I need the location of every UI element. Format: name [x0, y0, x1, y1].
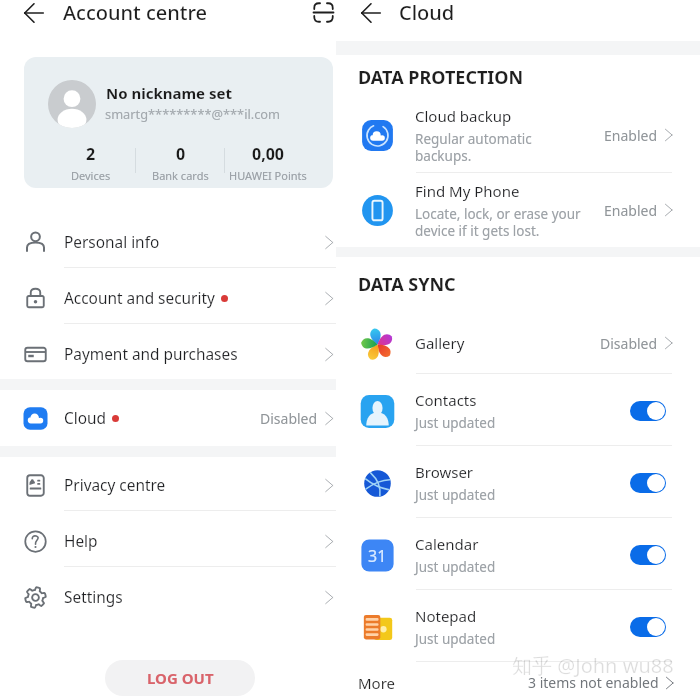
button[interactable]: Contacts	[336, 377, 700, 445]
button[interactable]: Toggle Browser	[630, 473, 666, 493]
staticText: Gallery	[415, 333, 465, 353]
staticText: Calendar	[415, 534, 479, 554]
staticText: 知乎 @John wu88	[512, 652, 674, 679]
button[interactable]: Browser	[336, 449, 700, 517]
button[interactable]: Notepad	[336, 593, 700, 661]
staticText: 31	[368, 545, 387, 567]
staticText: Account centre	[63, 0, 207, 26]
button[interactable]: Toggle Calendar	[630, 545, 666, 565]
staticText: Disabled	[260, 409, 318, 428]
button[interactable]: Help	[0, 513, 336, 569]
staticText: Regular automatic backups.	[415, 130, 532, 165]
staticText: Personal info	[64, 232, 160, 253]
button[interactable]: More	[336, 665, 700, 700]
button[interactable]: Privacy centre	[0, 457, 336, 513]
staticText: 3 items not enabled	[528, 673, 659, 692]
staticText: Privacy centre	[64, 475, 166, 496]
button[interactable]: Toggle Contacts	[630, 401, 666, 421]
staticText: Contacts	[415, 390, 477, 410]
button[interactable]: Settings	[0, 569, 336, 625]
staticText: HUAWEI Points	[229, 168, 307, 183]
button[interactable]: Scan QR code	[313, 2, 334, 23]
staticText: Cloud backup	[415, 106, 512, 126]
staticText: Enabled	[604, 126, 658, 145]
staticText: 0	[176, 143, 186, 165]
staticText: 0,00	[252, 143, 285, 165]
button[interactable]: No nickname set	[24, 57, 333, 188]
button[interactable]: Toggle Notepad	[630, 617, 666, 637]
staticText: LOG OUT	[147, 668, 214, 688]
button[interactable]: Personal info	[0, 214, 336, 270]
staticText: smartg*********@***il.com	[105, 105, 281, 122]
staticText: Find My Phone	[415, 181, 520, 201]
staticText: Browser	[415, 462, 474, 482]
staticText: Enabled	[604, 201, 658, 220]
button[interactable]: Account and security	[0, 270, 336, 326]
staticText: Bank cards	[152, 168, 209, 183]
staticText: 2	[86, 143, 96, 165]
staticText: Disabled	[600, 334, 658, 353]
staticText: Just updated	[415, 414, 496, 432]
staticText: Payment and purchases	[64, 344, 238, 365]
staticText: Just updated	[415, 558, 496, 576]
staticText: Account and security	[64, 288, 215, 309]
staticText: Just updated	[415, 630, 496, 648]
staticText: DATA SYNC	[358, 272, 456, 297]
button[interactable]: 31	[336, 521, 700, 589]
staticText: Locate, lock, or erase your device if it…	[415, 205, 581, 240]
staticText: Cloud	[64, 408, 106, 429]
staticText: No nickname set	[106, 83, 232, 103]
button[interactable]: Cloud backup	[336, 100, 700, 170]
staticText: Notepad	[415, 606, 477, 626]
staticText: More	[358, 673, 396, 693]
staticText: Devices	[71, 168, 111, 183]
staticText: Cloud	[399, 0, 455, 26]
button[interactable]: LOG OUT	[105, 660, 255, 696]
button[interactable]: Back	[23, 2, 45, 24]
staticText: Settings	[64, 587, 123, 608]
staticText: Help	[64, 531, 98, 552]
button[interactable]: Cloud	[0, 390, 336, 446]
button[interactable]: Find My Phone	[336, 175, 700, 245]
button[interactable]: Payment and purchases	[0, 326, 336, 382]
staticText: Just updated	[415, 486, 496, 504]
button[interactable]: Gallery	[336, 313, 700, 373]
staticText: DATA PROTECTION	[358, 65, 524, 90]
button[interactable]: Back	[360, 2, 382, 24]
